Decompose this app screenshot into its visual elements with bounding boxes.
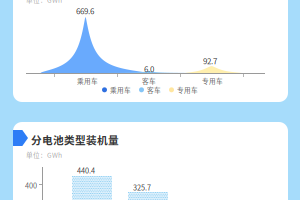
staticText: 669.6 bbox=[76, 5, 94, 17]
staticText: 乘用车 bbox=[77, 76, 98, 86]
staticText: 325.7 bbox=[133, 182, 151, 193]
staticText: 乘用车 bbox=[110, 85, 131, 95]
staticText: 92.7 bbox=[203, 55, 217, 67]
staticText: 单位：GWh bbox=[26, 0, 62, 5]
staticText: 400 bbox=[25, 180, 37, 191]
staticText: 专用车 bbox=[202, 76, 223, 86]
staticText: 440.4 bbox=[77, 165, 95, 176]
staticText: 6.0 bbox=[144, 63, 154, 75]
staticText: 客车 bbox=[147, 85, 161, 95]
staticText: 客车 bbox=[142, 76, 156, 86]
staticText: 专用车 bbox=[177, 85, 198, 95]
staticText: 单位：GWh bbox=[26, 150, 62, 160]
staticText: 分电池类型装机量 bbox=[31, 132, 119, 147]
